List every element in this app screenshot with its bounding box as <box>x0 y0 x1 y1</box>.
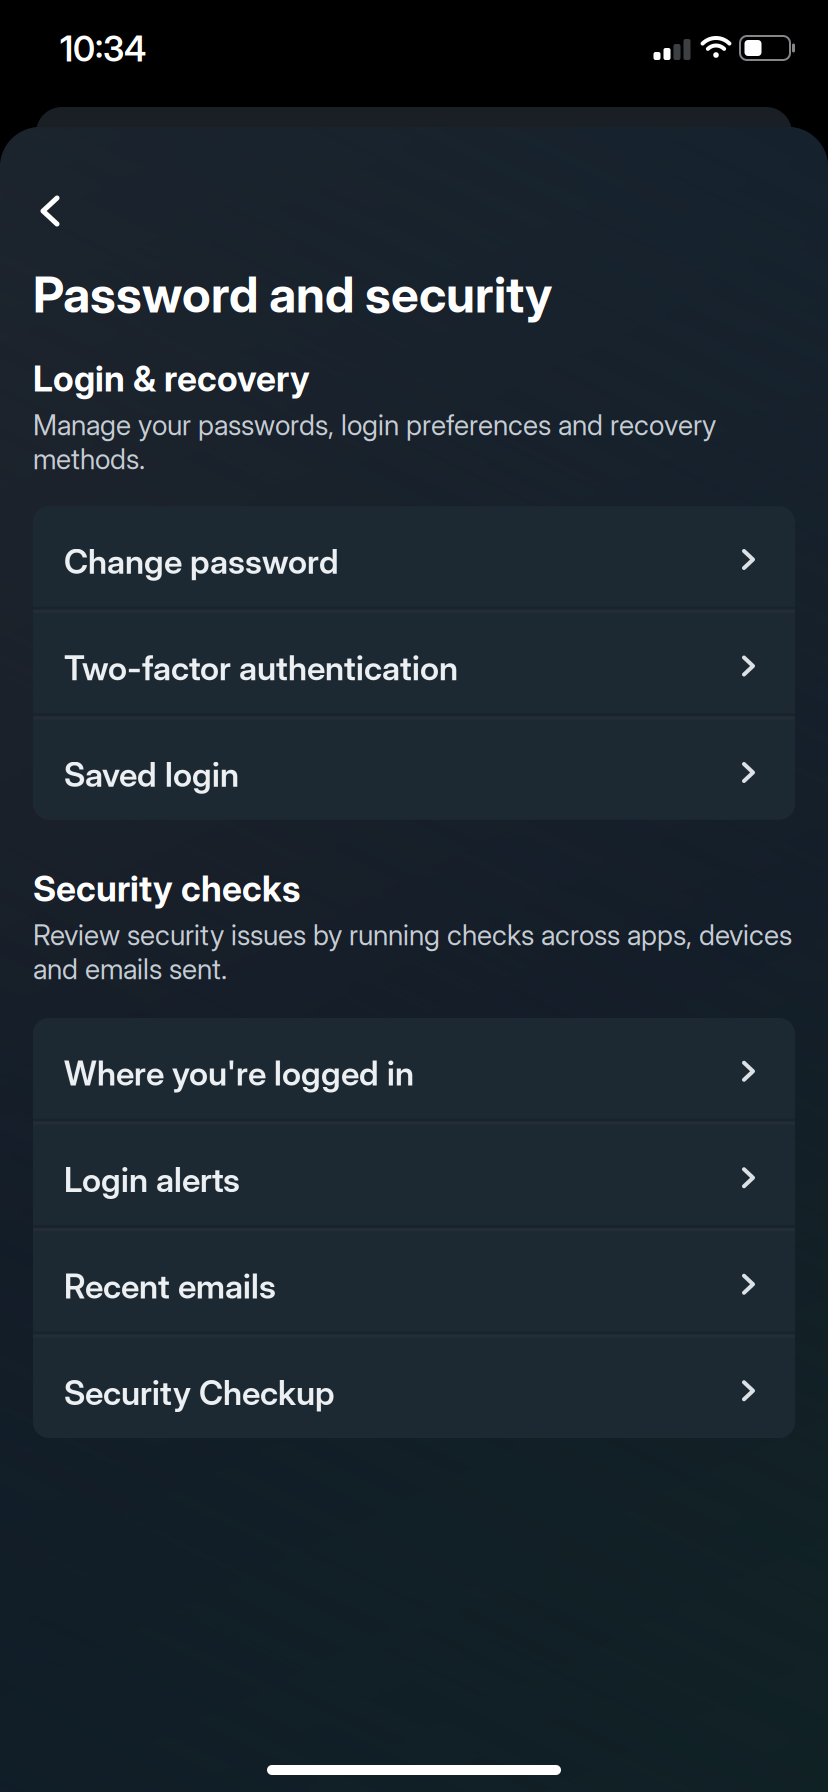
button[interactable]: Change password <box>33 506 795 607</box>
button[interactable]: Security Checkup <box>33 1337 795 1438</box>
staticText: Change password <box>64 541 339 582</box>
staticText: Recent emails <box>64 1266 276 1306</box>
staticText: Saved login <box>64 754 239 795</box>
button[interactable]: Two-factor authentication <box>33 613 795 713</box>
staticText: Manage your passwords, login preferences… <box>33 408 716 476</box>
button[interactable]: Where you're logged in <box>33 1018 795 1118</box>
staticText: Login & recovery <box>33 357 310 400</box>
staticText: Login alerts <box>64 1160 240 1200</box>
staticText: Password and security <box>33 265 552 324</box>
staticText: Where you're logged in <box>64 1053 414 1093</box>
button[interactable]: Recent emails <box>33 1231 795 1331</box>
staticText: Two-factor authentication <box>64 648 458 688</box>
button[interactable]: Login alerts <box>33 1124 795 1225</box>
button[interactable]: Saved login <box>33 719 795 820</box>
button[interactable] <box>20 181 80 241</box>
staticText: Review security issues by running checks… <box>33 918 792 986</box>
staticText: 10:34 <box>60 28 146 70</box>
staticText: Security Checkup <box>64 1373 335 1413</box>
staticText: Security checks <box>33 867 300 910</box>
